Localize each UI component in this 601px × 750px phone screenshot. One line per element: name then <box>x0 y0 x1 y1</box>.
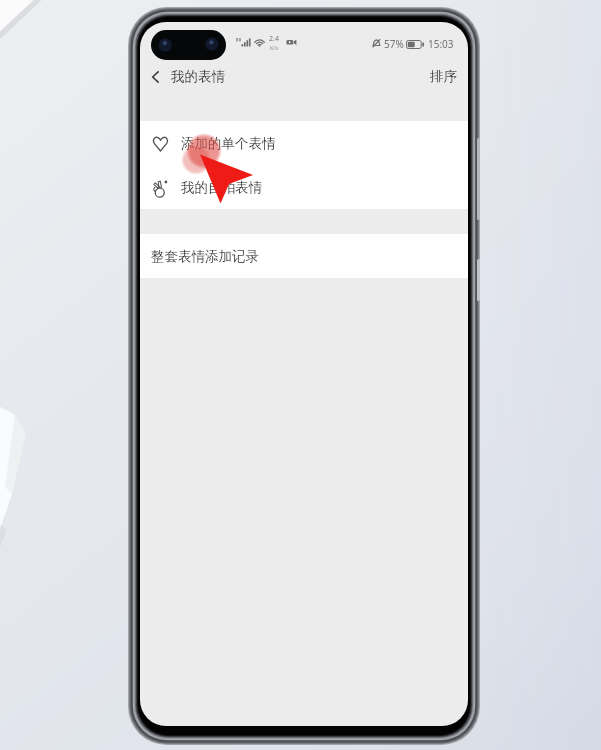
button[interactable]: 整套表情添加记录 <box>140 234 468 278</box>
staticText: 57% <box>384 37 404 51</box>
button[interactable]: 我的自拍表情 <box>140 166 468 209</box>
staticText: K/s <box>270 44 279 51</box>
staticText: 我的自拍表情 <box>181 179 262 196</box>
staticText: 15:03 <box>428 37 454 51</box>
staticText: 添加的单个表情 <box>181 135 276 152</box>
button[interactable]: 排序 <box>430 68 457 85</box>
staticText: 排序 <box>430 68 457 85</box>
button[interactable]: 添加的单个表情 <box>140 121 468 166</box>
staticText: 整套表情添加记录 <box>151 248 259 265</box>
staticText: 2.4 <box>269 34 279 44</box>
button[interactable]: Back <box>142 54 168 99</box>
staticText: 我的表情 <box>171 68 225 85</box>
